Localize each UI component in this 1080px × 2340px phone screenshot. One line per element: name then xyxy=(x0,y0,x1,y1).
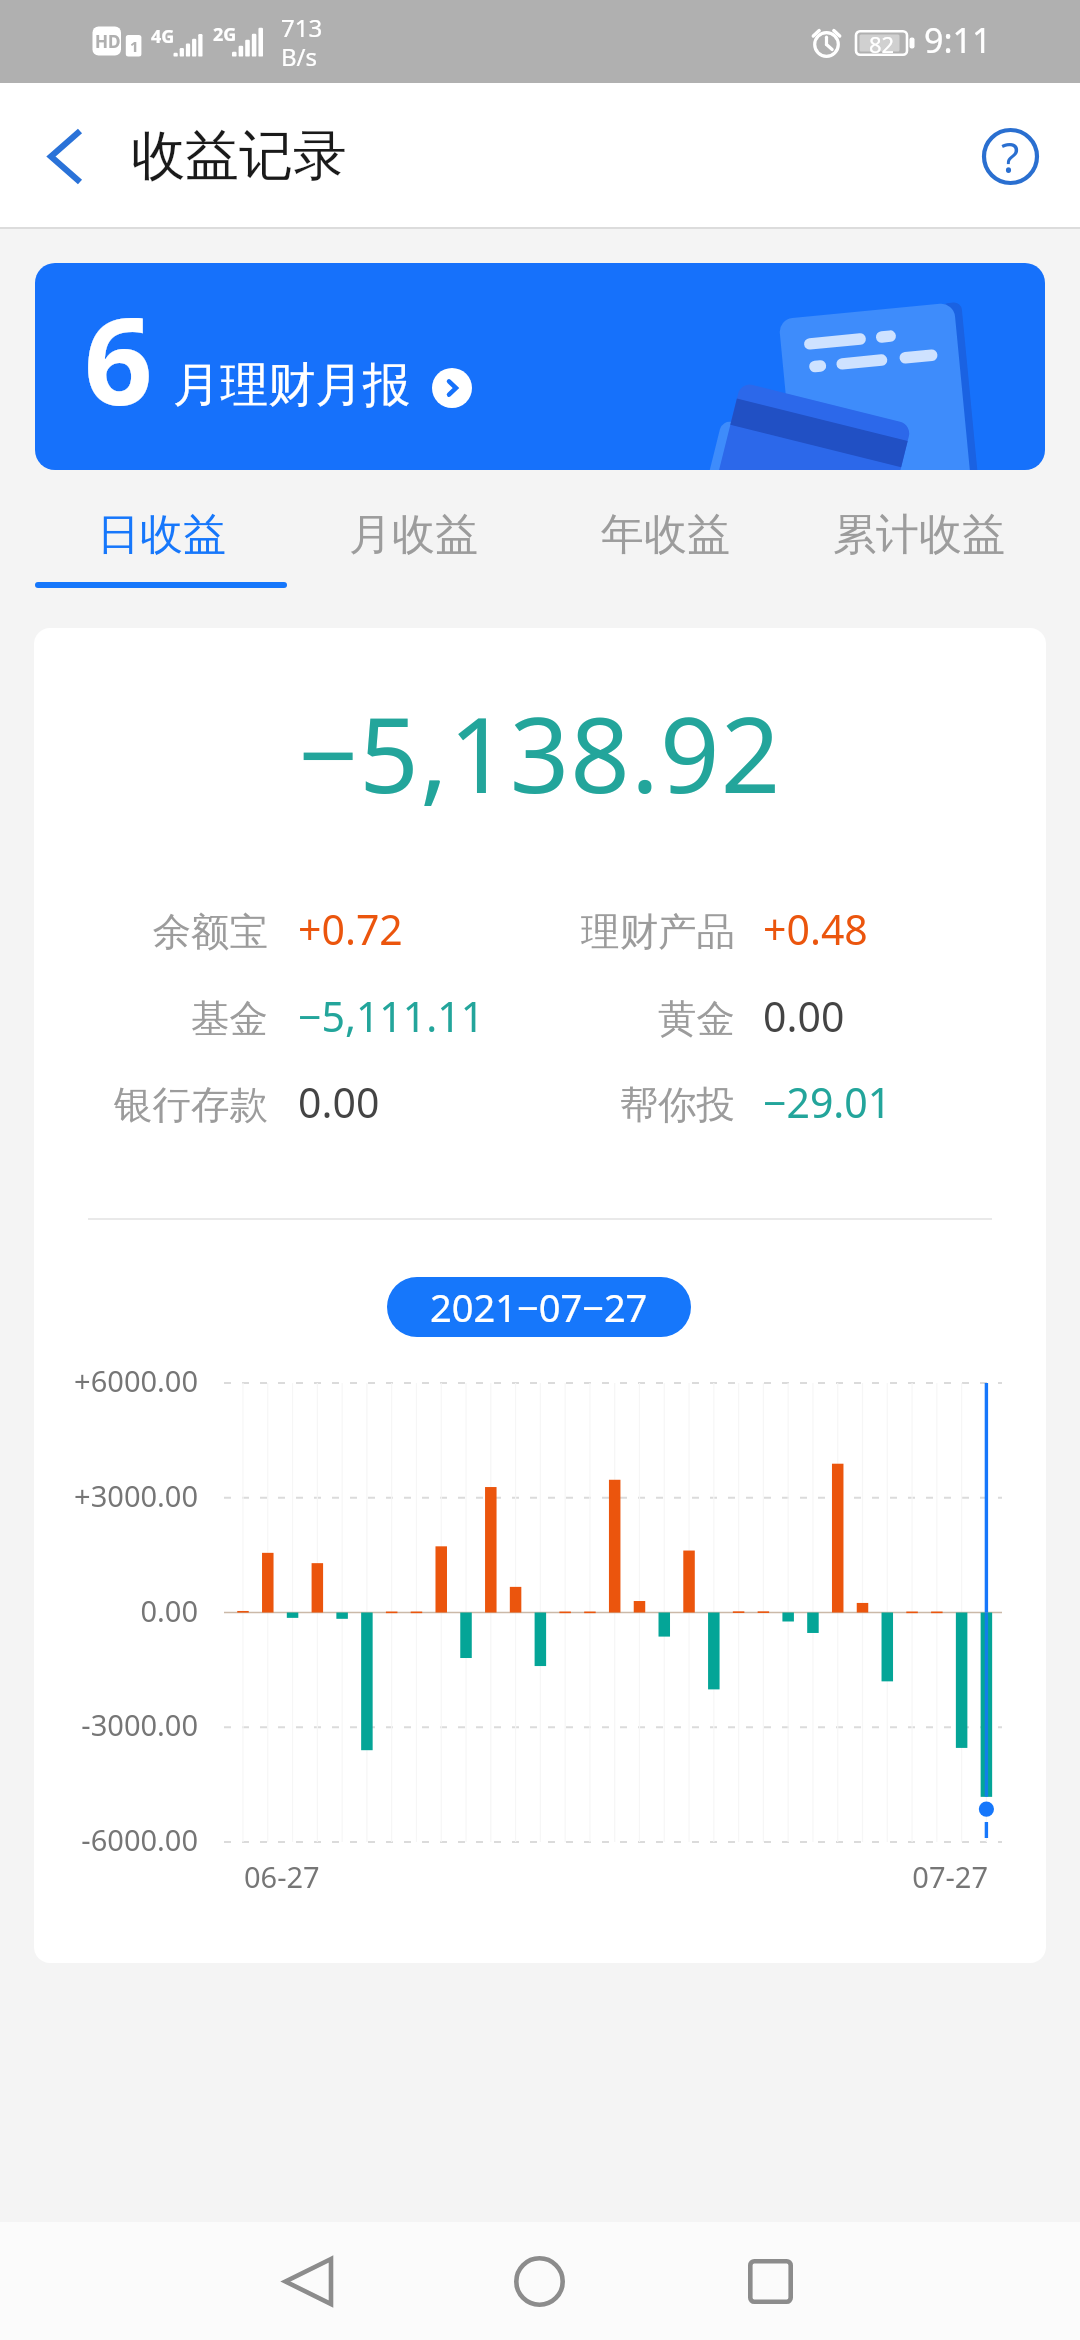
staticText: 基金 xyxy=(34,995,268,1044)
staticText: 日收益 xyxy=(97,508,226,562)
staticText: 82 xyxy=(869,29,895,57)
staticText: 月收益 xyxy=(349,508,478,562)
staticText: 9:11 xyxy=(924,17,992,63)
staticText: 0.00 xyxy=(298,1074,380,1130)
staticText: −29.01 xyxy=(763,1074,892,1130)
staticText: +6000.00 xyxy=(34,1361,198,1400)
staticText: 06-27 xyxy=(244,1857,320,1896)
staticText: 年收益 xyxy=(601,508,730,562)
staticText: ? xyxy=(1001,128,1020,185)
staticText: 4G xyxy=(151,24,175,49)
staticText: +3000.00 xyxy=(34,1476,198,1515)
button[interactable]: 月收益 xyxy=(287,504,539,566)
button[interactable]: Recent apps xyxy=(710,2222,830,2340)
staticText: 1 xyxy=(130,36,139,56)
button[interactable]: Back xyxy=(248,2222,368,2340)
staticText: 帮你投 xyxy=(335,1081,735,1130)
staticText: -6000.00 xyxy=(34,1820,198,1859)
staticText: 累计收益 xyxy=(833,508,1005,562)
staticText: 2G xyxy=(213,22,237,47)
staticText: B/s xyxy=(281,40,318,73)
staticText: HD xyxy=(95,30,121,53)
staticText: +0.72 xyxy=(298,901,403,957)
staticText: 收益记录 xyxy=(131,122,347,190)
staticText: 月理财月报 xyxy=(173,355,411,415)
staticText: 0.00 xyxy=(34,1591,198,1630)
staticText: −5,111.11 xyxy=(298,988,485,1044)
staticText: 2021−07−27 xyxy=(430,1281,648,1333)
staticText: 余额宝 xyxy=(34,908,268,957)
staticText: 6 xyxy=(84,277,153,440)
button[interactable]: 年收益 xyxy=(539,504,792,566)
staticText: 0.00 xyxy=(763,988,845,1044)
staticText: +0.48 xyxy=(763,901,868,957)
button[interactable]: 6 xyxy=(35,263,1045,470)
button[interactable]: 日收益 xyxy=(35,504,287,566)
button[interactable]: Home xyxy=(479,2222,599,2340)
staticText: 理财产品 xyxy=(335,908,735,957)
staticText: 银行存款 xyxy=(34,1081,268,1130)
button[interactable]: 累计收益 xyxy=(792,504,1045,566)
staticText: 黄金 xyxy=(335,995,735,1044)
staticText: -3000.00 xyxy=(34,1705,198,1744)
button[interactable]: Back xyxy=(0,91,130,221)
staticText: 07-27 xyxy=(788,1857,988,1896)
button[interactable]: 2021−07−27 xyxy=(387,1277,691,1337)
staticText: 713 xyxy=(281,11,323,44)
staticText: −5,138.92 xyxy=(34,682,1046,824)
button[interactable]: Help xyxy=(968,114,1052,198)
